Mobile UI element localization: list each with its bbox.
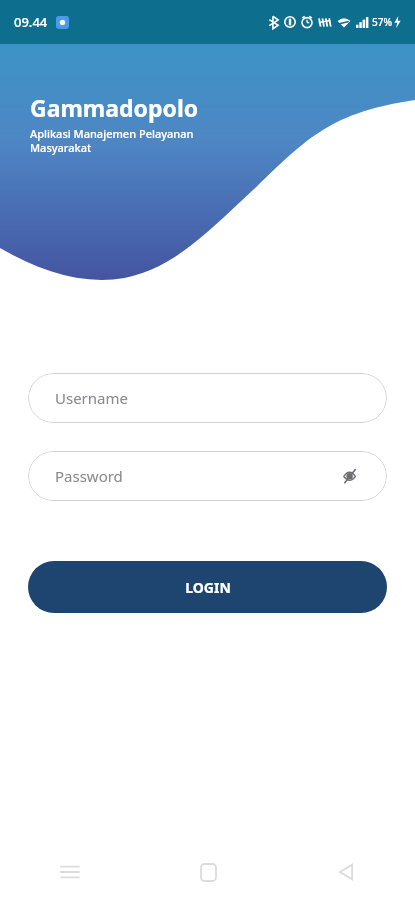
button[interactable]: LOGIN: [28, 561, 387, 613]
staticText: Username: [55, 388, 128, 408]
button[interactable]: Back: [277, 844, 415, 900]
staticText: Aplikasi Manajemen Pelayanan Masyarakat: [30, 126, 194, 155]
button[interactable]: Show password: [341, 463, 367, 489]
staticText: Password: [55, 466, 123, 486]
staticText: Gammadopolo: [30, 92, 199, 123]
button[interactable]: Recent apps: [0, 844, 139, 900]
button[interactable]: Password: [28, 451, 387, 501]
button[interactable]: Home: [139, 844, 277, 900]
staticText: 57%: [372, 15, 392, 29]
button[interactable]: Username: [28, 373, 387, 423]
staticText: LOGIN: [185, 578, 231, 597]
staticText: 09.44: [14, 13, 48, 31]
